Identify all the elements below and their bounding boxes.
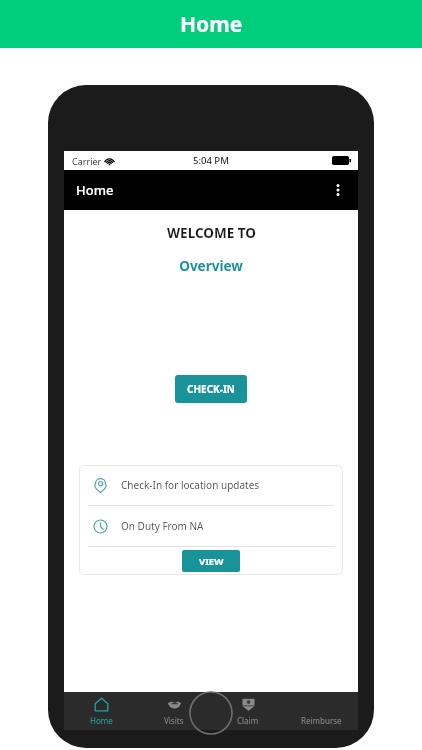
staticText: On Duty From NA (121, 519, 204, 533)
button[interactable]: Visits (138, 692, 210, 730)
staticText: Home (76, 181, 114, 199)
staticText: Reimburse (301, 715, 342, 726)
staticText: Check-In for location updates (121, 478, 260, 492)
staticText: Overview (179, 257, 243, 275)
button[interactable]: CHECK-IN (175, 375, 247, 403)
staticText: Home (180, 10, 243, 39)
staticText: CHECK-IN (187, 382, 235, 396)
button[interactable]: More options (324, 176, 352, 204)
staticText: 5:04 PM (193, 154, 229, 167)
staticText: Visits (164, 715, 184, 726)
button[interactable]: Claim (212, 692, 284, 730)
staticText: Home (90, 715, 113, 726)
button[interactable]: Home (65, 692, 137, 730)
staticText: VIEW (199, 555, 224, 568)
staticText: Claim (237, 715, 259, 726)
staticText: WELCOME TO (167, 224, 256, 242)
button[interactable]: Check-In for location updates (79, 465, 343, 505)
button[interactable]: VIEW (182, 550, 240, 572)
button[interactable]: On Duty From NA (79, 506, 343, 546)
staticText: Carrier (72, 155, 102, 167)
button[interactable]: Reimburse (285, 692, 357, 730)
